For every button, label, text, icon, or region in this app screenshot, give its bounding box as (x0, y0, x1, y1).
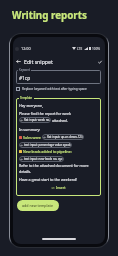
staticText: attached. (52, 118, 68, 123)
staticText: #1cp (19, 75, 31, 82)
staticText: Edit snippet (24, 58, 53, 65)
button[interactable]: text input: percentage value xyzab (20, 142, 71, 148)
button[interactable] (16, 98, 101, 196)
staticText: flat input: up-or-down-123 (47, 135, 83, 139)
staticText: Keyword (19, 68, 30, 72)
staticText: New leads added to pipeline: (23, 149, 72, 154)
staticText: 12:00 (21, 46, 31, 51)
staticText: text input: percentage value xyzab (24, 143, 71, 147)
staticText: details. (19, 169, 32, 174)
button[interactable]: flat input: week no. (20, 117, 50, 123)
staticText: Refer to the attached document for more (19, 163, 89, 168)
button[interactable]: Replace keyword with text after typing s… (16, 87, 102, 91)
staticText: Writing reports (12, 9, 87, 22)
button[interactable]: text input: new leads no. xyz (20, 156, 63, 162)
button[interactable]: add new template (22, 203, 54, 208)
staticText: LTE (77, 47, 83, 51)
button[interactable]: Back (15, 56, 103, 67)
staticText: Replace keyword with text after typing s… (22, 87, 87, 91)
staticText: Hey everyone, (19, 103, 43, 108)
staticText: flat input: week no. (24, 118, 50, 122)
button[interactable]: #1cp (16, 70, 101, 84)
staticText: Please find the report for week (19, 111, 72, 116)
staticText: Insert (56, 185, 66, 190)
button[interactable]: flat input: up-or-down-123 (43, 134, 83, 140)
staticText: Sales were (23, 135, 41, 140)
staticText: text input: new leads no. xyz (24, 157, 63, 161)
staticText: In summary: (19, 127, 41, 132)
button[interactable]: Back (15, 58, 22, 65)
button[interactable]: Save (96, 58, 103, 65)
staticText: 100% (92, 47, 101, 51)
button[interactable]: Insert (51, 185, 66, 190)
staticText: Have a great start to the weekend! (19, 177, 78, 182)
staticText: Template (20, 96, 33, 100)
staticText: add new template (22, 203, 54, 208)
